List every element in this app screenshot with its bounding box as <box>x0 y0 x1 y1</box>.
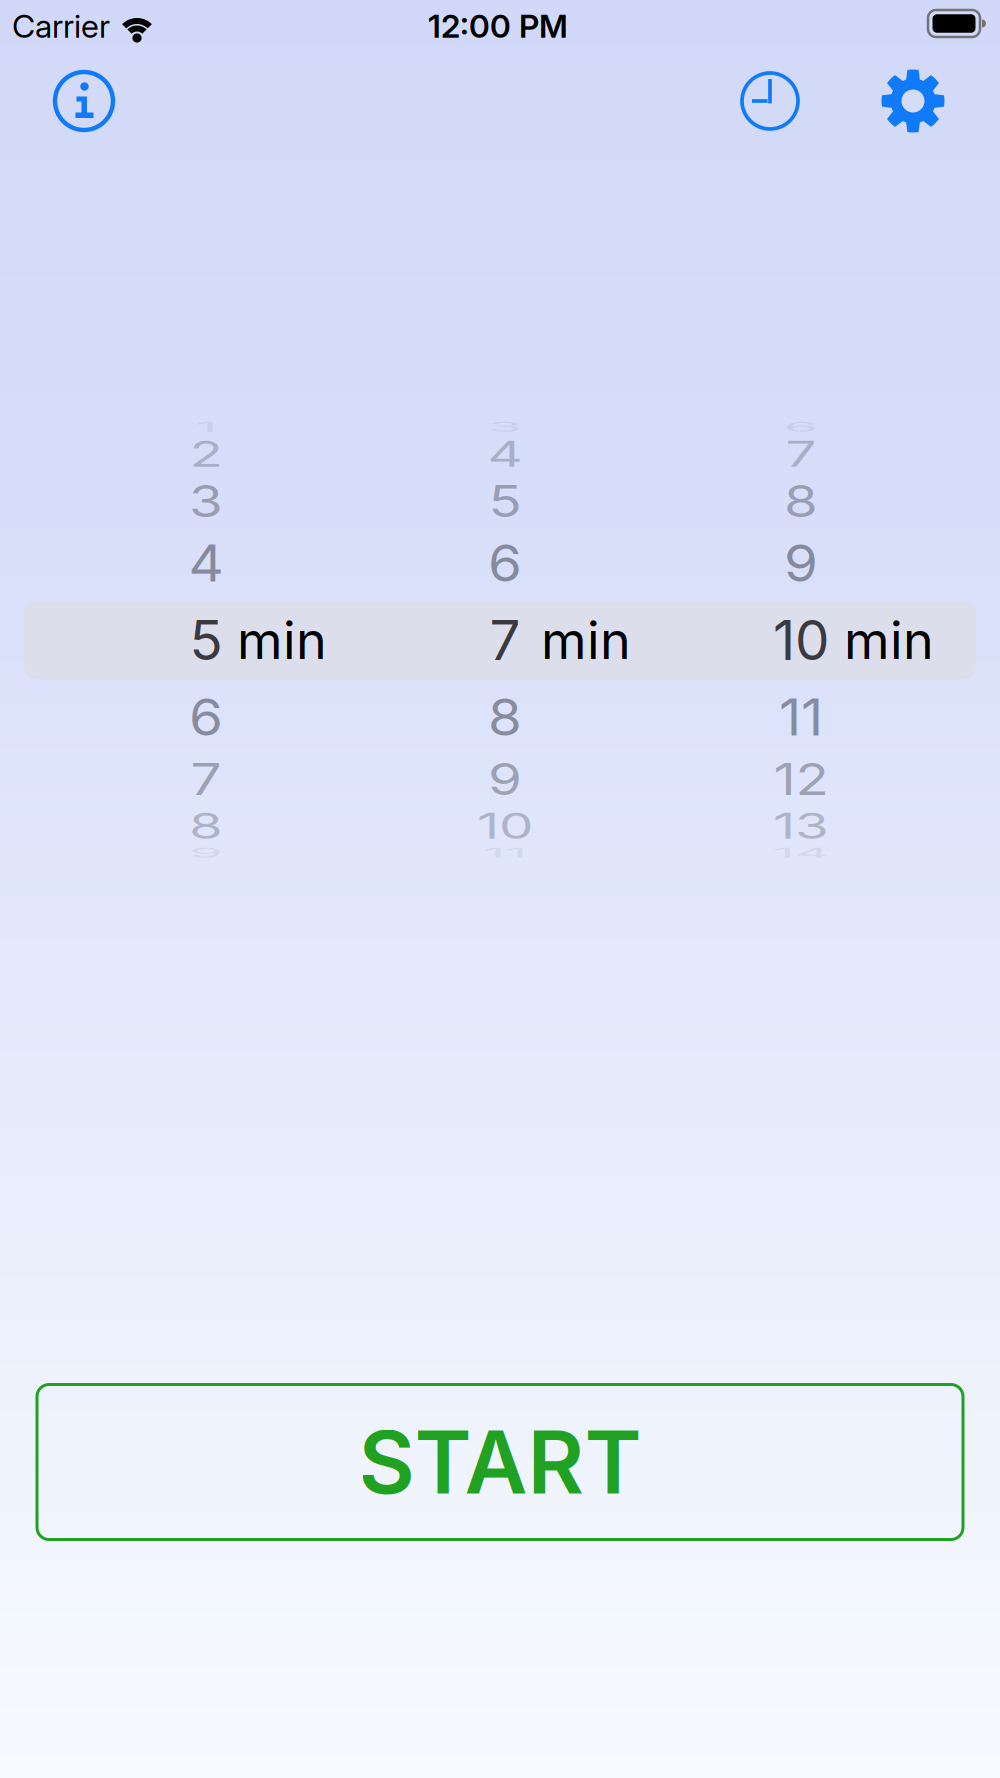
staticText: 4 <box>487 422 522 486</box>
staticText: START <box>358 1411 641 1513</box>
staticText: 4 <box>188 531 223 595</box>
button[interactable]: History <box>738 69 802 133</box>
staticText: 9 <box>784 531 818 595</box>
staticText: 9 <box>189 821 223 885</box>
staticText: 5 <box>488 469 521 533</box>
staticText: 8 <box>189 794 223 858</box>
staticText: 10 <box>773 608 829 672</box>
staticText: 7 <box>785 422 816 486</box>
staticText: 6 <box>784 395 818 459</box>
staticText: 3 <box>189 469 223 533</box>
staticText: 8 <box>784 469 818 533</box>
staticText: min <box>844 609 934 671</box>
staticText: 6 <box>488 531 522 595</box>
staticText: 12:00 PM <box>428 7 568 45</box>
staticText: 12 <box>773 747 828 811</box>
staticText: 11 <box>483 821 527 885</box>
button[interactable]: Info <box>52 69 116 133</box>
staticText: min <box>541 609 631 671</box>
staticText: 2 <box>189 422 222 486</box>
staticText: 5 <box>189 608 222 672</box>
staticText: 13 <box>773 794 829 858</box>
staticText: 7 <box>489 608 520 672</box>
staticText: min <box>237 609 327 671</box>
staticText: 3 <box>488 395 522 459</box>
staticText: 14 <box>772 821 829 885</box>
staticText: 10 <box>477 794 533 858</box>
staticText: 7 <box>190 747 221 811</box>
button[interactable]: Settings <box>880 68 946 134</box>
button[interactable]: START <box>37 1384 963 1539</box>
staticText: 9 <box>488 747 522 811</box>
staticText: Carrier <box>12 7 110 45</box>
staticText: 6 <box>189 685 223 749</box>
staticText: 1 <box>195 395 217 459</box>
staticText: 11 <box>779 685 823 749</box>
staticText: 8 <box>488 685 522 749</box>
